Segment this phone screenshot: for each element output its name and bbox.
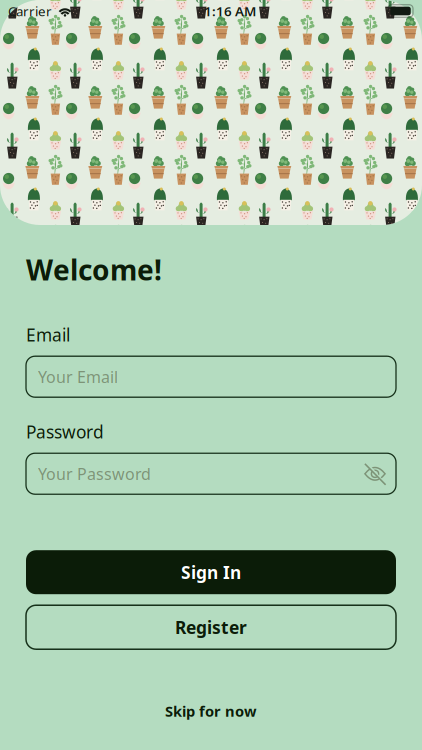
staticText: Password [26, 420, 104, 443]
staticText: Skip for now [165, 701, 257, 721]
button[interactable]: Skip for now [26, 699, 396, 723]
staticText: Sign In [181, 561, 241, 584]
staticText: Welcome! [26, 251, 162, 288]
staticText: Email [26, 323, 70, 346]
staticText: Carrier [8, 2, 52, 20]
staticText: 1:16 AM [204, 2, 256, 20]
button[interactable]: Sign In [26, 550, 396, 594]
button[interactable]: Register [26, 605, 396, 649]
staticText: Your Password [38, 463, 151, 484]
staticText: Your Email [38, 366, 118, 387]
staticText: Register [175, 616, 247, 639]
